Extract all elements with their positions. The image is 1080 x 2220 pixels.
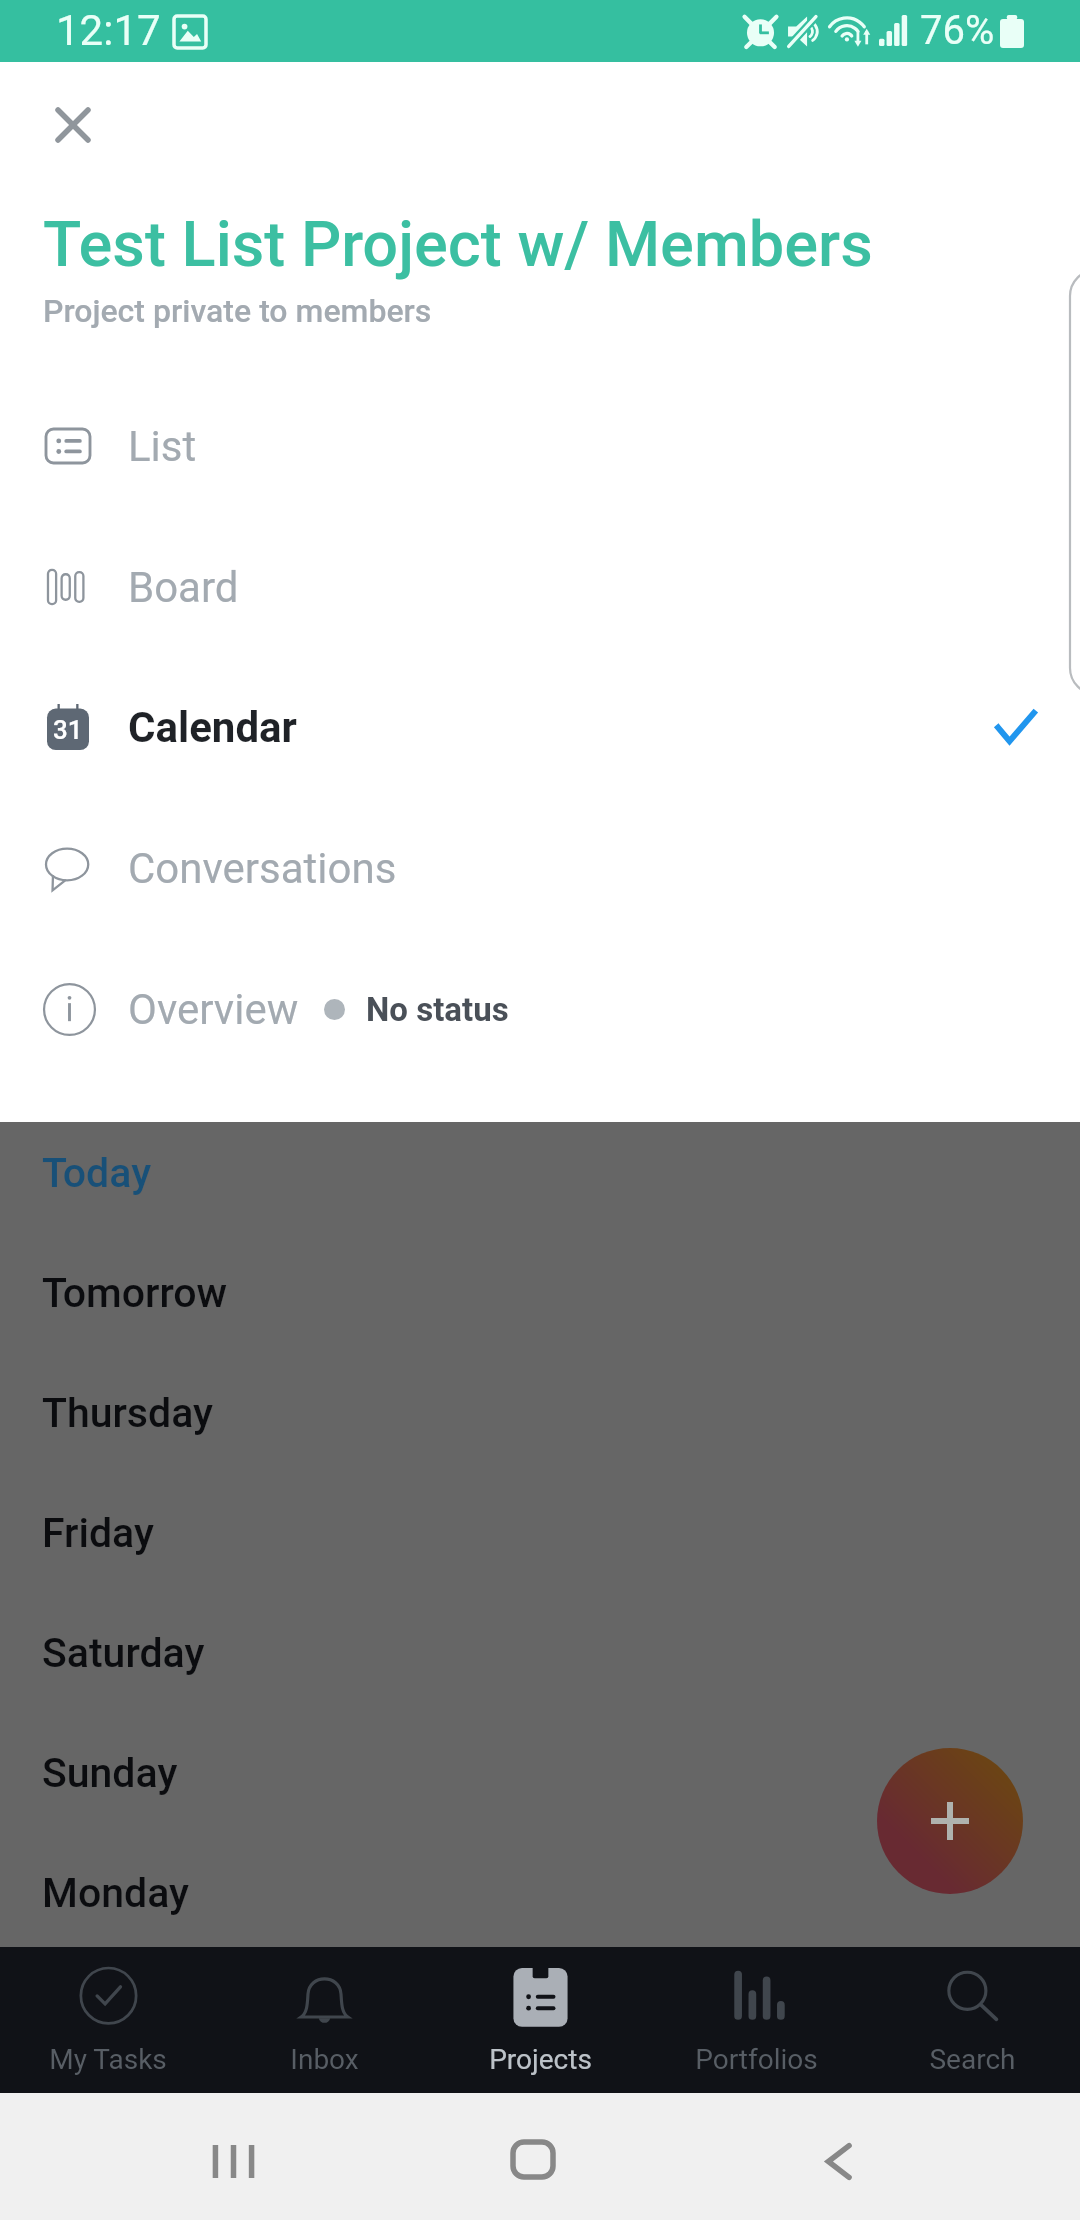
button[interactable]: Add task (877, 1748, 1023, 1894)
button[interactable]: Thursday (0, 1353, 1080, 1473)
button[interactable]: Close (33, 85, 113, 165)
staticText: 31 (53, 715, 83, 745)
staticText: Portfolios (695, 2043, 818, 2076)
button[interactable]: Board (0, 517, 1080, 657)
button[interactable]: List (0, 376, 1080, 516)
button[interactable]: Sunday (0, 1713, 1080, 1833)
button[interactable]: Saturday (0, 1593, 1080, 1713)
staticText: Projects (489, 2043, 592, 2076)
button[interactable]: Overview (0, 939, 1080, 1079)
button[interactable]: Search (864, 1947, 1080, 2098)
staticText: Test List Project w/ Members (43, 208, 873, 282)
staticText: Saturday (42, 1629, 205, 1677)
staticText: Friday (42, 1509, 154, 1557)
button[interactable]: Tomorrow (0, 1233, 1080, 1353)
staticText: My Tasks (49, 2043, 167, 2076)
button[interactable]: Today (0, 1113, 1080, 1233)
button[interactable]: Portfolios (648, 1947, 864, 2098)
staticText: Conversations (128, 844, 397, 893)
staticText: 12:17 (56, 6, 161, 55)
button[interactable]: My Tasks (0, 1947, 216, 2098)
staticText: Sunday (42, 1749, 178, 1797)
staticText: No status (366, 990, 509, 1029)
staticText: Monday (42, 1869, 190, 1917)
staticText: Project private to members (43, 292, 432, 330)
staticText: Board (128, 563, 239, 612)
button[interactable]: Projects (432, 1947, 648, 2098)
staticText: Tomorrow (42, 1269, 228, 1317)
button[interactable]: Inbox (216, 1947, 432, 2098)
staticText: Overview (128, 985, 299, 1034)
button[interactable]: Conversations (0, 798, 1080, 938)
staticText: Inbox (290, 2043, 359, 2076)
button[interactable]: Back (783, 2127, 893, 2195)
button[interactable]: Home (478, 2125, 588, 2193)
button[interactable]: Friday (0, 1473, 1080, 1593)
staticText: Search (929, 2043, 1016, 2076)
staticText: List (128, 422, 197, 471)
button[interactable]: 31 (0, 657, 1080, 797)
button[interactable]: Recents (178, 2127, 288, 2195)
staticText: Calendar (128, 703, 297, 752)
button[interactable]: Monday (0, 1833, 1080, 1953)
staticText: Thursday (42, 1389, 214, 1437)
staticText: 76% (920, 7, 995, 54)
staticText: Today (42, 1149, 152, 1197)
